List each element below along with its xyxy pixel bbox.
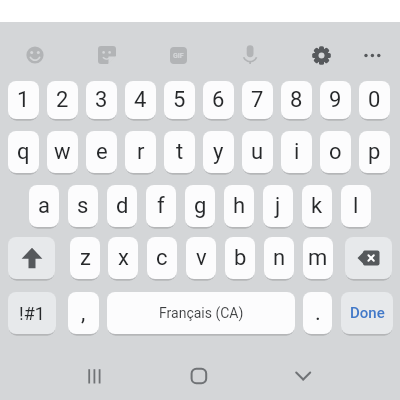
button[interactable]: s [68,185,98,227]
staticText: !#1 [19,303,45,324]
staticText: f [157,193,165,219]
staticText: w [54,139,71,165]
staticText: g [194,193,207,219]
button[interactable]: i [281,131,312,173]
button[interactable] [362,50,383,61]
staticText: u [251,139,264,165]
button[interactable]: q [8,131,39,173]
staticText: 0 [368,87,381,113]
staticText: 7 [251,87,264,113]
button[interactable]: k [302,185,332,227]
button[interactable] [26,46,44,64]
button[interactable]: l [341,185,371,227]
staticText: z [80,245,91,271]
staticText: e [96,139,108,165]
staticText: i [294,139,300,165]
button[interactable]: 5 [164,81,195,119]
button[interactable]: u [242,131,273,173]
staticText: , [81,300,86,326]
staticText: j [275,193,281,219]
staticText: 4 [134,87,147,113]
staticText: d [116,193,129,219]
button[interactable]: , [68,292,99,334]
button[interactable]: 7 [242,81,273,119]
button[interactable]: 3 [86,81,117,119]
staticText: Français (CA) [159,305,244,321]
staticText: c [156,245,168,271]
staticText: 5 [173,87,186,113]
button[interactable]: Français (CA) [107,292,295,334]
button[interactable] [189,366,209,386]
button[interactable]: 9 [320,81,351,119]
button[interactable] [345,237,392,279]
staticText: 8 [290,87,303,113]
button[interactable]: w [47,131,78,173]
staticText: x [118,245,129,271]
staticText: b [234,245,247,271]
button[interactable]: h [224,185,254,227]
button[interactable]: j [263,185,293,227]
staticText: q [17,139,30,165]
button[interactable]: 2 [47,81,78,119]
button[interactable]: d [107,185,137,227]
staticText: k [311,193,323,219]
button[interactable]: !#1 [8,292,56,334]
button[interactable] [240,44,260,64]
button[interactable]: y [203,131,234,173]
staticText: s [77,193,89,219]
button[interactable]: Done [341,292,393,334]
button[interactable]: p [359,131,390,173]
button[interactable]: e [86,131,117,173]
button[interactable]: c [147,237,177,279]
staticText: t [176,139,184,165]
button[interactable] [85,366,107,386]
button[interactable]: m [303,237,333,279]
staticText: 6 [212,87,225,113]
staticText: m [308,245,328,271]
button[interactable]: a [29,185,59,227]
button[interactable]: z [70,237,100,279]
staticText: Done [350,304,385,322]
staticText: v [196,245,207,271]
staticText: r [137,139,145,165]
staticText: . [315,300,321,326]
staticText: 1 [17,87,30,113]
button[interactable] [8,237,55,279]
button[interactable]: 4 [125,81,156,119]
staticText: p [368,139,381,165]
staticText: 9 [329,87,342,113]
staticText: GIF [173,52,184,60]
button[interactable] [293,366,313,386]
button[interactable]: o [320,131,351,173]
button[interactable]: f [146,185,176,227]
button[interactable]: GIF [170,47,187,64]
staticText: l [353,193,359,219]
button[interactable]: r [125,131,156,173]
button[interactable]: t [164,131,195,173]
button[interactable]: 6 [203,81,234,119]
button[interactable] [312,46,331,65]
button[interactable]: b [225,237,255,279]
staticText: y [213,139,224,165]
staticText: o [329,139,342,165]
button[interactable]: v [186,237,216,279]
button[interactable]: g [185,185,215,227]
button[interactable]: 1 [8,81,39,119]
button[interactable]: n [264,237,294,279]
button[interactable]: 0 [359,81,390,119]
staticText: 3 [95,87,108,113]
staticText: n [273,245,286,271]
staticText: h [233,193,246,219]
button[interactable]: 8 [281,81,312,119]
button[interactable]: x [108,237,138,279]
staticText: 2 [56,87,69,113]
button[interactable]: . [303,292,332,334]
staticText: a [38,193,50,219]
button[interactable] [98,46,117,65]
